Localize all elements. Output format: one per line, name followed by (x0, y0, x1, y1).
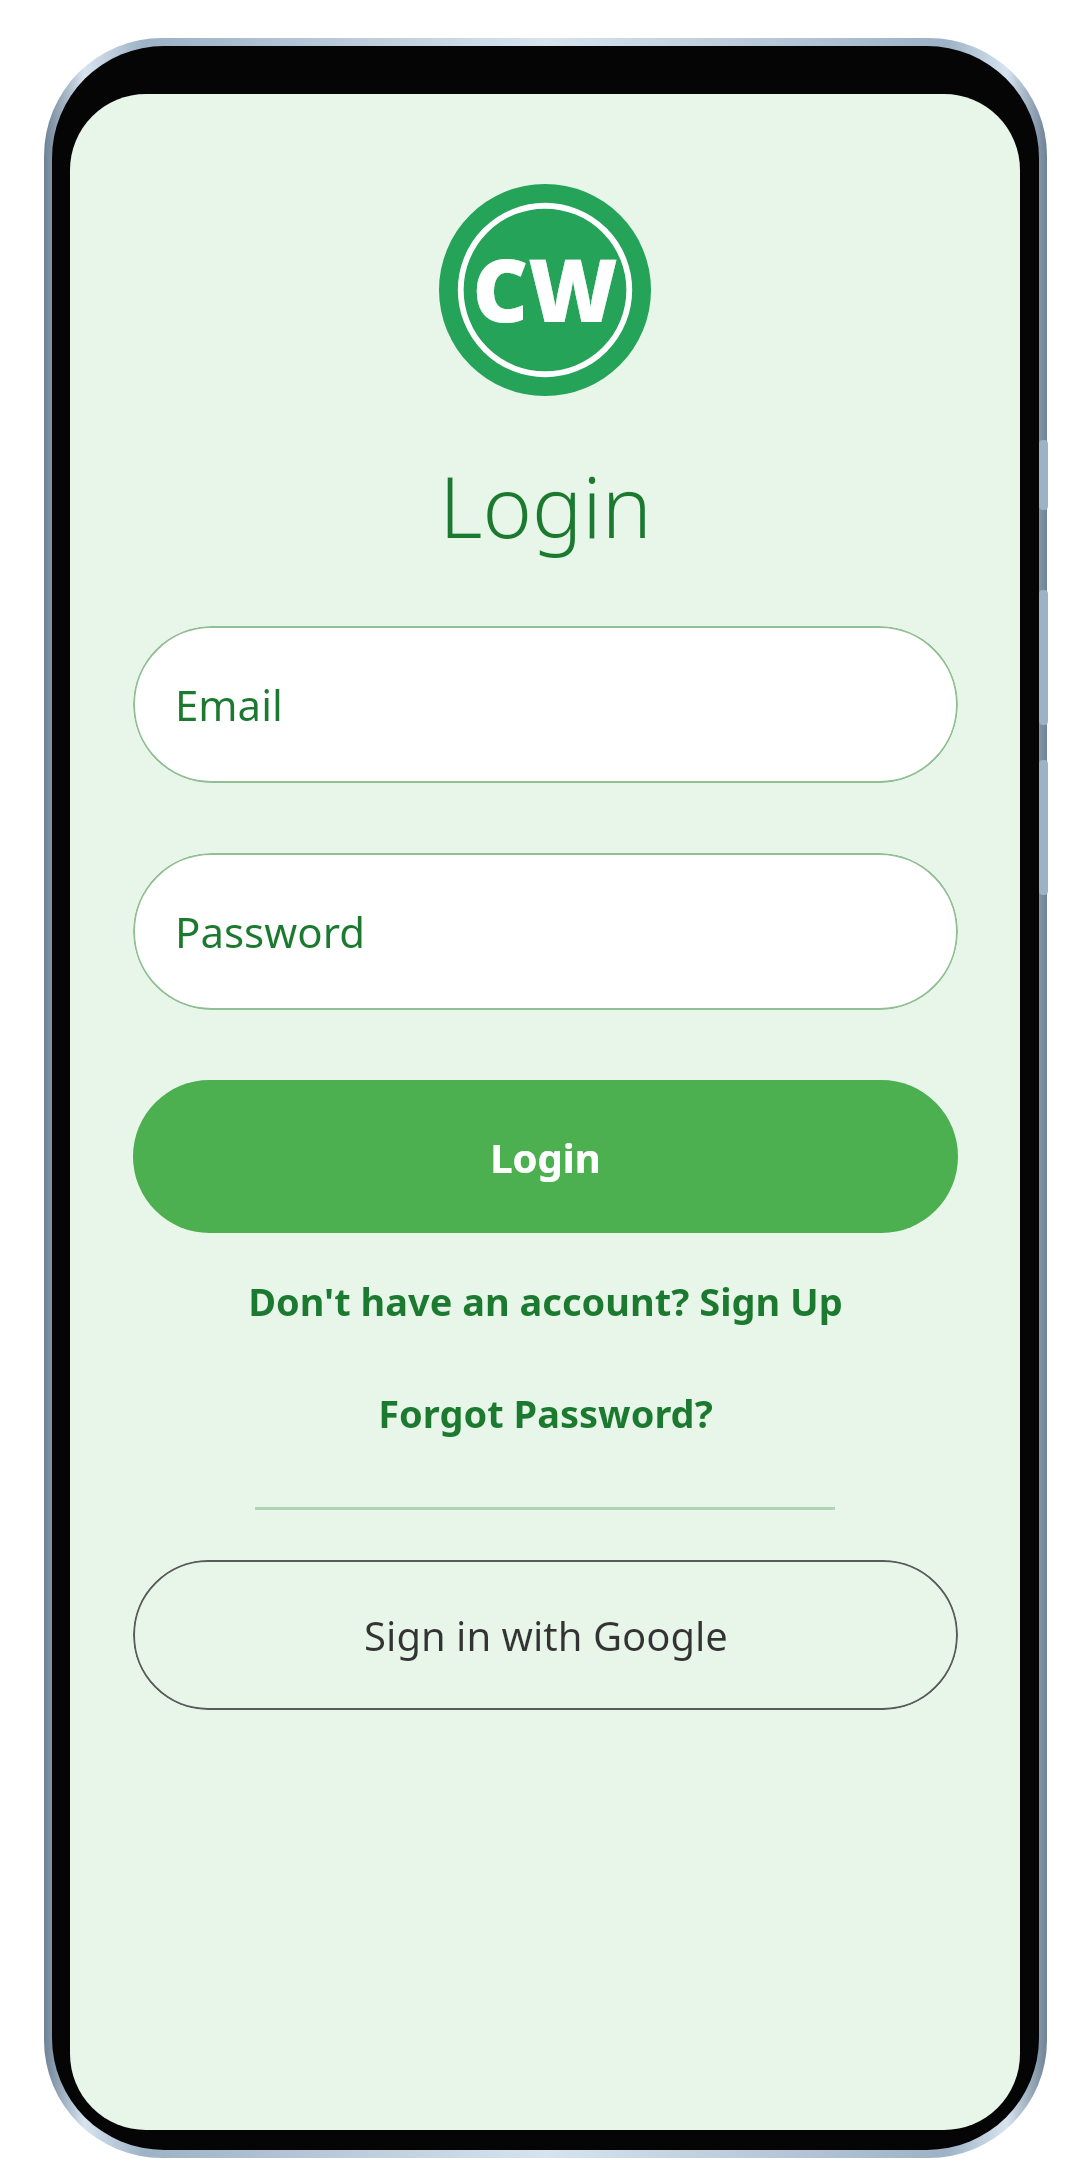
staticText: Login (490, 1130, 601, 1184)
staticText: Email (175, 676, 283, 733)
button[interactable]: Sign in with Google (133, 1560, 958, 1710)
staticText: Login (439, 448, 652, 562)
button[interactable]: Login (133, 1080, 958, 1233)
staticText: Forgot Password? (378, 1387, 713, 1439)
staticText: CW (472, 230, 618, 347)
staticText: Sign in with Google (364, 1608, 728, 1662)
other: CW logo (439, 184, 651, 396)
staticText: Password (175, 903, 365, 960)
button[interactable]: Email (133, 626, 958, 783)
button[interactable]: Don't have an account? Sign Up (234, 1267, 857, 1335)
staticText: Don't have an account? Sign Up (248, 1275, 843, 1327)
button[interactable]: Forgot Password? (364, 1379, 727, 1447)
button[interactable]: Password (133, 853, 958, 1010)
